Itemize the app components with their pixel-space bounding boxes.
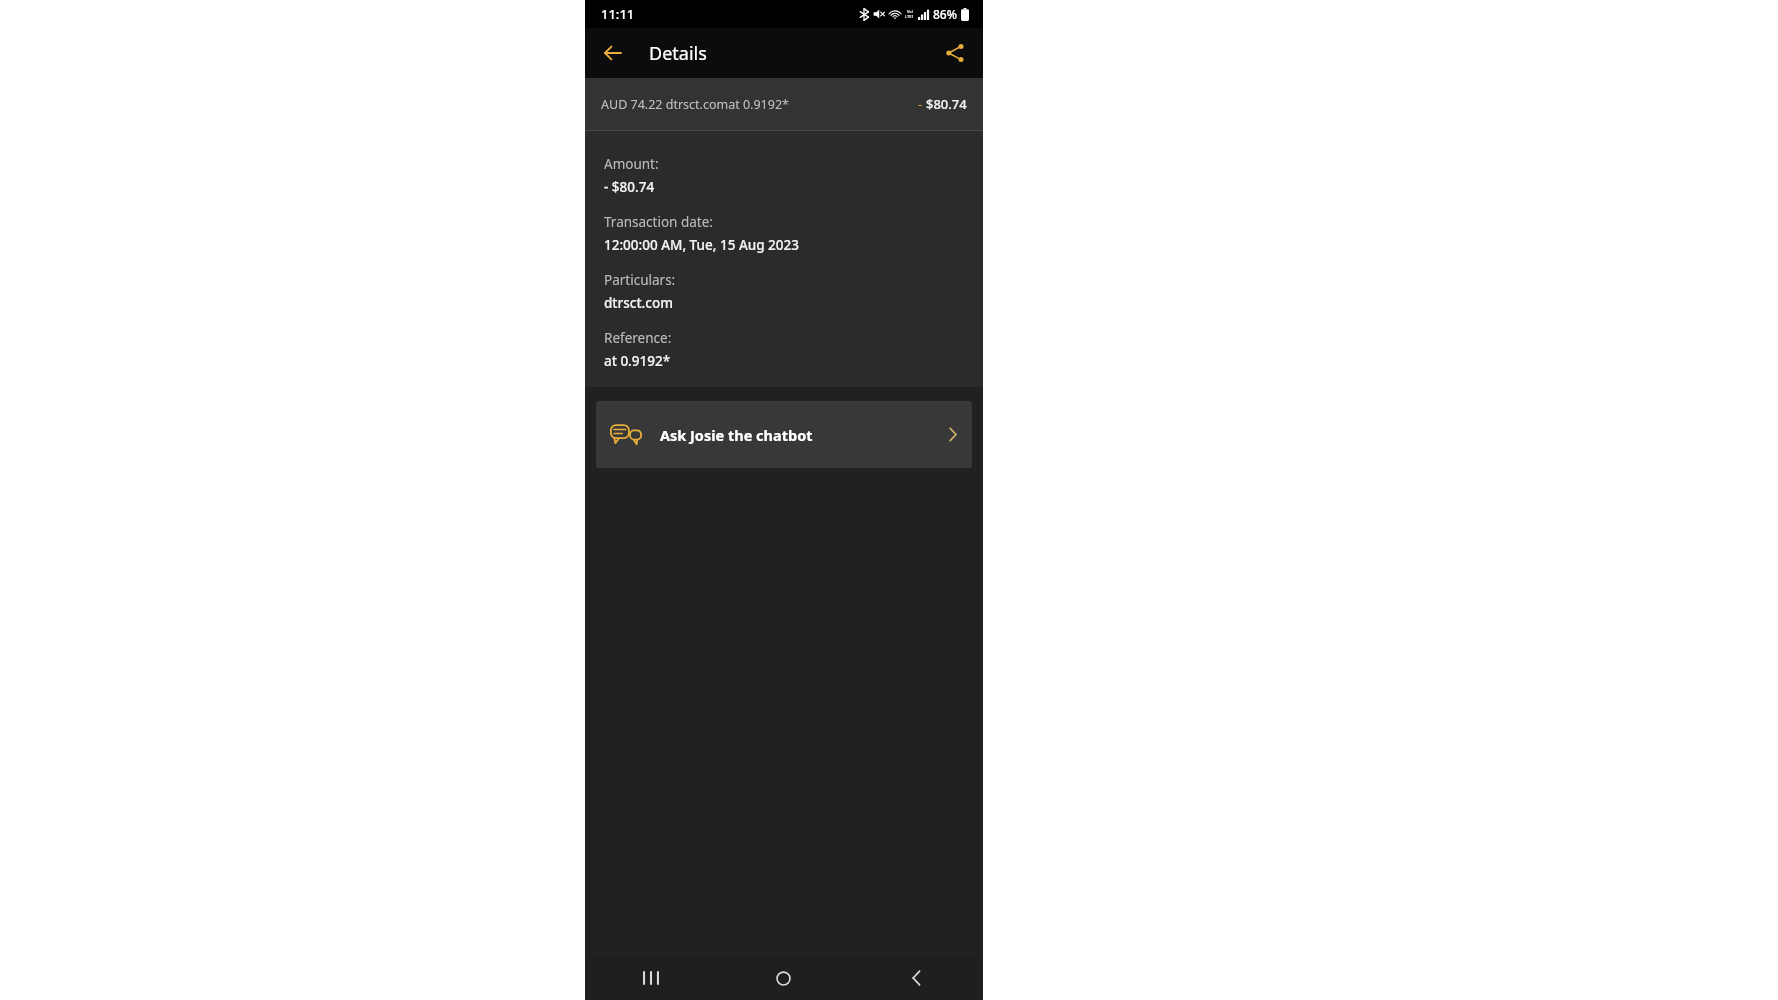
staticText: dtrsct.com: [604, 294, 673, 312]
button[interactable]: Recent apps: [585, 956, 717, 1000]
staticText: -: [918, 95, 923, 113]
staticText: 86%: [933, 6, 957, 22]
staticText: Ask Josie the chatbot: [660, 425, 948, 445]
staticText: Reference:: [604, 329, 672, 347]
button[interactable]: Back: [850, 956, 983, 1000]
staticText: Vol: [907, 9, 913, 14]
staticText: Particulars:: [604, 271, 676, 289]
staticText: - $80.74: [604, 178, 655, 196]
button[interactable]: Share: [935, 33, 975, 73]
staticText: Details: [649, 41, 707, 66]
button[interactable]: Back: [593, 33, 633, 73]
staticText: AUD 74.22 dtrsct.comat 0.9192*: [601, 96, 918, 113]
button[interactable]: Home: [717, 956, 850, 1000]
staticText: Transaction date:: [604, 213, 713, 231]
staticText: LTE1: [905, 14, 914, 19]
staticText: 12:00:00 AM, Tue, 15 Aug 2023: [604, 236, 799, 254]
staticText: $80.74: [926, 95, 967, 113]
staticText: Amount:: [604, 155, 659, 173]
button[interactable]: AUD 74.22 dtrsct.comat 0.9192*: [585, 78, 983, 130]
staticText: 11:11: [601, 5, 635, 23]
staticText: at 0.9192*: [604, 352, 671, 370]
button[interactable]: Ask Josie the chatbot: [596, 401, 972, 468]
